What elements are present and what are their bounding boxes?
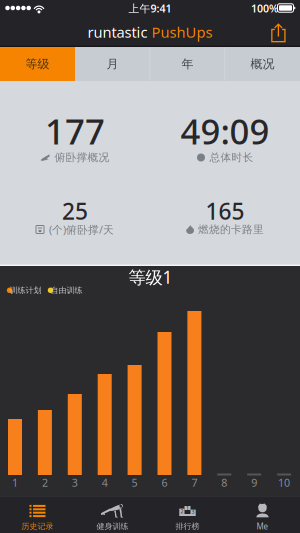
button[interactable]: Me — [225, 496, 300, 533]
staticText: 俯卧撑概况 — [54, 151, 109, 164]
staticText: 10 — [278, 475, 290, 490]
staticText: 100% — [251, 1, 278, 15]
staticText: 2 — [42, 475, 48, 490]
staticText: 上午9:41 — [128, 1, 171, 15]
staticText: 7 — [191, 475, 197, 490]
staticText: 自由训练 — [50, 285, 82, 295]
staticText: Me — [256, 521, 268, 532]
staticText: 概况 — [250, 57, 274, 71]
button[interactable]: 健身训练 — [75, 496, 150, 533]
button[interactable]: 等级 — [0, 47, 75, 81]
staticText: 2 — [180, 508, 183, 515]
staticText: 训练计划 — [9, 285, 41, 295]
button[interactable]: 月 — [75, 47, 150, 81]
staticText: 总体时长 — [209, 151, 253, 164]
button[interactable]: 年 — [150, 47, 225, 81]
staticText: 6 — [161, 475, 167, 490]
staticText: (个)俯卧撑/天 — [49, 222, 114, 237]
staticText: 49:09 — [180, 108, 269, 154]
staticText: runtastic — [87, 22, 147, 42]
staticText: 年 — [181, 57, 193, 71]
staticText: 历史记录 — [21, 521, 53, 531]
staticText: 4 — [102, 475, 108, 490]
staticText: 排行榜 — [175, 521, 199, 531]
staticText: 25 — [62, 196, 88, 226]
staticText: 3 — [192, 508, 195, 515]
staticText: 燃烧的卡路里 — [198, 223, 264, 236]
button[interactable]: 概况 — [225, 47, 300, 81]
staticText: 健身训练 — [96, 521, 128, 531]
staticText: 1 — [12, 475, 18, 490]
staticText: 等级 — [25, 57, 49, 71]
button[interactable]: 历史记录 — [0, 496, 75, 533]
staticText: 9 — [251, 475, 257, 490]
staticText: 8 — [221, 475, 227, 490]
staticText: 5 — [132, 475, 138, 490]
staticText: 等级1 — [128, 265, 172, 288]
staticText: PushUps — [147, 22, 212, 42]
staticText: 月 — [106, 57, 118, 71]
staticText: 165 — [205, 196, 244, 226]
button[interactable]: 1 — [150, 496, 225, 533]
button[interactable]: 分享 — [258, 19, 298, 47]
staticText: 1 — [186, 504, 189, 512]
staticText: 3 — [72, 475, 78, 490]
staticText: 177 — [45, 108, 105, 154]
